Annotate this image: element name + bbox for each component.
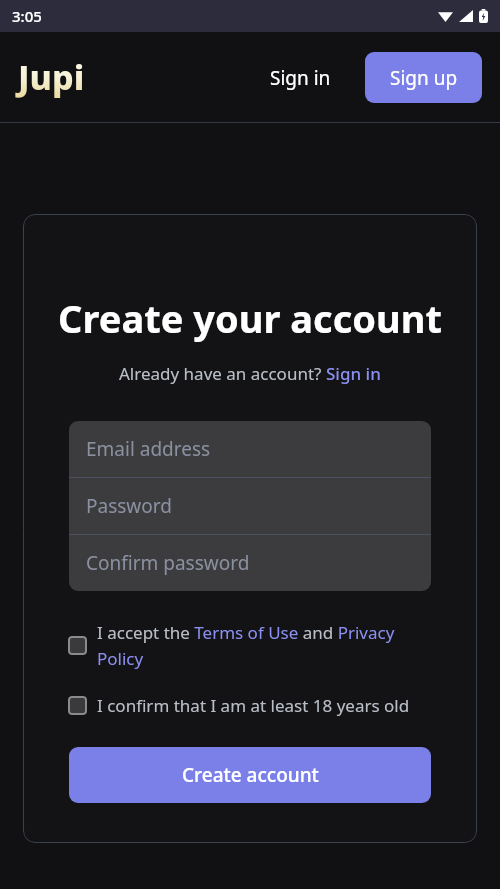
button[interactable]: Checkbox [68, 694, 432, 717]
staticText: 3:05 [12, 6, 42, 26]
button[interactable]: Confirm password [69, 535, 431, 591]
staticText: Create account [182, 762, 319, 788]
other: Checkbox [68, 696, 87, 715]
button[interactable]: Checkbox [68, 621, 432, 670]
staticText: I confirm that I am at least 18 years ol… [97, 694, 410, 717]
other: Checkbox [68, 636, 87, 655]
staticText: Sign in [270, 65, 331, 91]
staticText: Sign in [326, 362, 381, 385]
staticText: Jupi [18, 54, 85, 100]
button[interactable]: Sign in [260, 57, 341, 99]
button[interactable]: Sign in [326, 362, 381, 385]
staticText: I accept the Terms of Use and Privacy Po… [97, 621, 432, 670]
button[interactable]: Password [69, 478, 431, 534]
button[interactable]: Create account [69, 747, 431, 803]
button[interactable]: Email address [69, 421, 431, 477]
staticText: Sign up [390, 65, 458, 91]
staticText: Already have an account? [119, 362, 326, 385]
button[interactable]: Sign up [365, 52, 482, 103]
staticText: Password [86, 493, 172, 519]
staticText: Confirm password [86, 550, 250, 576]
staticText: Email address [86, 436, 211, 462]
staticText: Create your account [58, 292, 442, 344]
